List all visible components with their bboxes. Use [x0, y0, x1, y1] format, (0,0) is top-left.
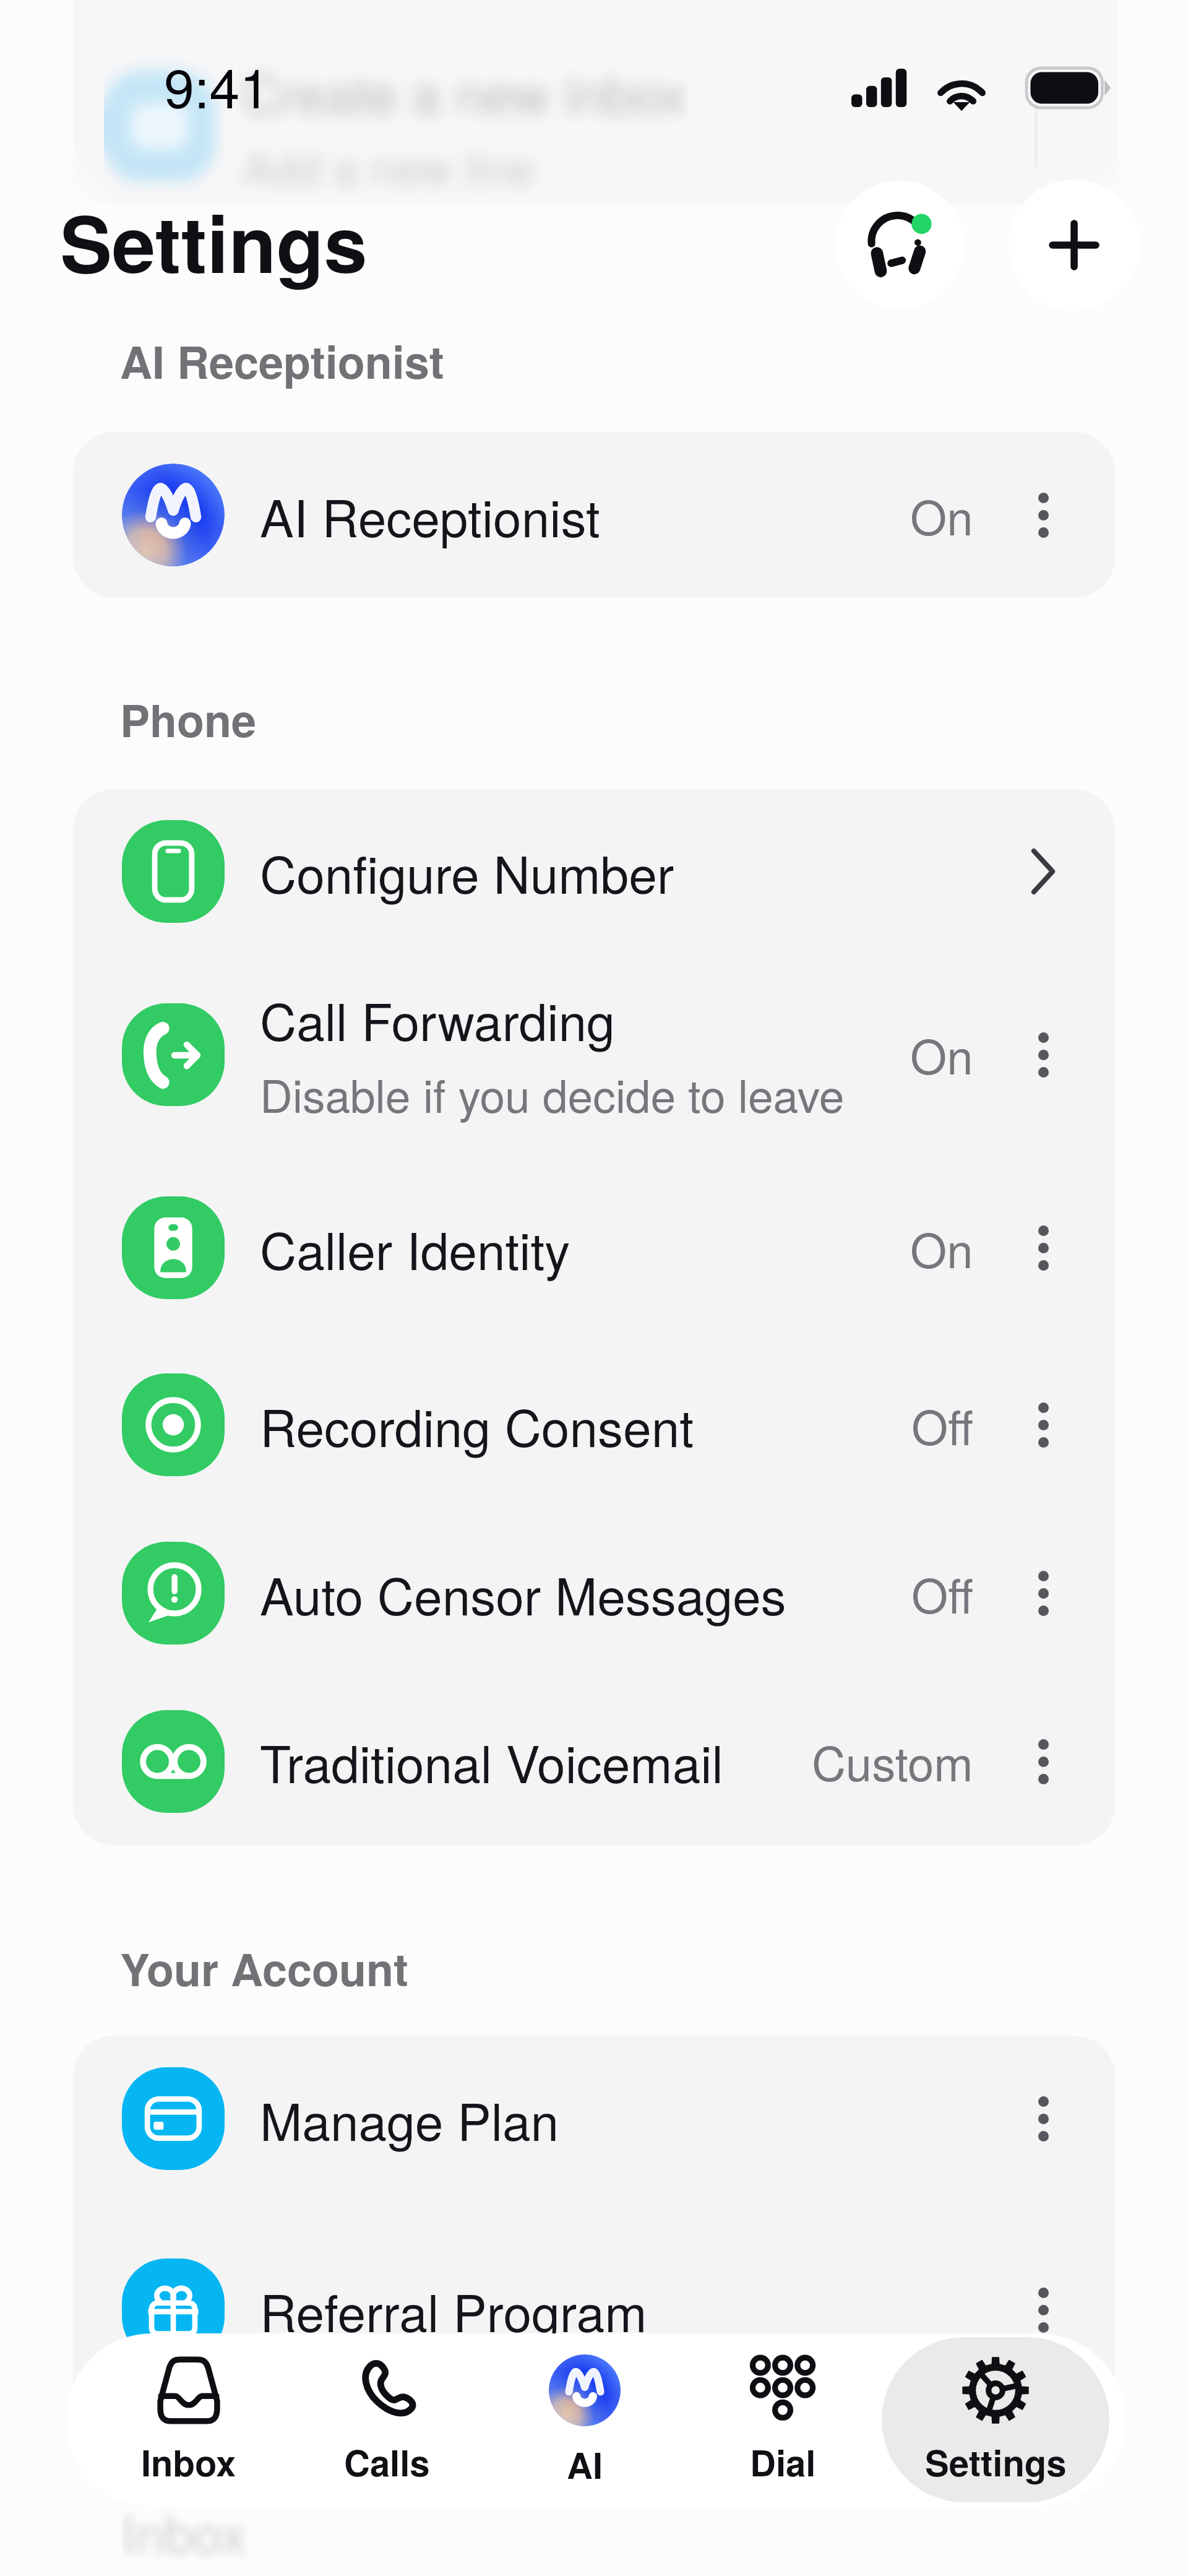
staticText: Calls [344, 2436, 430, 2487]
button[interactable]: More options [1012, 1394, 1074, 1456]
button[interactable]: Calls [288, 2337, 486, 2502]
staticText: AI Receptionist [120, 329, 444, 392]
button[interactable]: Settings [882, 2337, 1109, 2502]
button[interactable]: Support [835, 181, 964, 309]
button[interactable]: Configure Number [73, 789, 1115, 954]
button[interactable]: More options [1012, 2088, 1074, 2150]
staticText: On [910, 482, 973, 549]
button[interactable]: Auto Censor Messages [73, 1509, 1115, 1677]
staticText: Call Forwarding [260, 983, 615, 1055]
staticText: Inbox [121, 2494, 247, 2569]
button[interactable]: More options [1012, 1217, 1074, 1279]
button[interactable]: Add [1009, 179, 1140, 311]
staticText: 9:41 [164, 46, 270, 124]
staticText: Dial [750, 2436, 816, 2487]
staticText: Manage Plan [260, 2083, 559, 2155]
button[interactable]: More options [1012, 2279, 1074, 2341]
button[interactable]: Dial [684, 2337, 882, 2502]
staticText: Phone [120, 687, 257, 751]
button[interactable]: AI Receptionist [73, 432, 1115, 598]
staticText: Off [911, 1560, 973, 1627]
staticText: Create a new inbox [243, 54, 687, 129]
button[interactable]: Manage Plan [73, 2036, 1115, 2202]
button[interactable]: Call Forwarding [73, 954, 1115, 1155]
button[interactable]: More options [1012, 1024, 1074, 1086]
staticText: Caller Identity [260, 1212, 570, 1284]
staticText: On [910, 1214, 973, 1282]
staticText: Inbox [141, 2436, 236, 2487]
staticText: Disable if you decide to leave [260, 1061, 845, 1126]
button[interactable]: Inbox [89, 2337, 288, 2502]
staticText: On [910, 1021, 973, 1088]
button[interactable]: More options [1012, 484, 1074, 546]
staticText: Referral Program [260, 2274, 647, 2346]
button[interactable]: Traditional Voicemail [73, 1677, 1115, 1845]
staticText: Configure Number [260, 836, 674, 908]
staticText: Traditional Voicemail [260, 1725, 723, 1797]
button[interactable]: More options [1012, 1562, 1074, 1624]
button[interactable]: More options [1012, 1731, 1074, 1792]
staticText: Custom [812, 1727, 973, 1795]
staticText: AI Receptionist [260, 479, 600, 551]
staticText: Off [911, 1391, 973, 1459]
staticText: AI [567, 2439, 603, 2490]
staticText: Settings [60, 185, 368, 296]
staticText: Settings [925, 2436, 1067, 2487]
button[interactable]: Caller Identity [73, 1155, 1115, 1341]
button[interactable]: Recording Consent [73, 1341, 1115, 1509]
button[interactable]: AI [486, 2337, 684, 2502]
staticText: Add a new line [243, 134, 534, 197]
button[interactable]: Referral Program [73, 2202, 1115, 2418]
staticText: Recording Consent [260, 1389, 694, 1461]
staticText: Auto Censor Messages [260, 1557, 786, 1630]
staticText: Your Account [120, 1936, 408, 2000]
